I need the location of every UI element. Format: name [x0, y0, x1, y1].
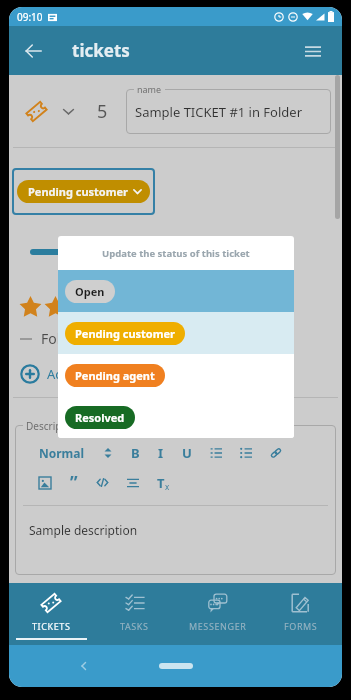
staticText: Followers — [41, 329, 104, 348]
staticText: T — [157, 474, 165, 492]
staticText: Open — [75, 284, 105, 299]
button[interactable]: Back — [9, 27, 57, 75]
staticText: Resolved — [75, 410, 125, 425]
staticText: Sample TICKET #1 in Folder — [135, 103, 303, 121]
button[interactable]: Resolved — [58, 396, 294, 438]
staticText: Add follower — [47, 365, 125, 383]
button[interactable]: Pending customer — [58, 312, 294, 354]
staticText: Pending customer — [28, 184, 128, 199]
staticText: 5 — [97, 99, 108, 124]
staticText: Pending customer — [75, 326, 175, 341]
button[interactable]: Add follower — [20, 364, 125, 384]
staticText: TICKETS — [32, 620, 71, 632]
button[interactable]: Pending agent — [58, 354, 294, 396]
staticText: Description — [26, 419, 80, 433]
button[interactable]: MESSENGER — [176, 583, 259, 645]
staticText: name — [137, 83, 162, 95]
button[interactable]: TASKS — [93, 583, 176, 645]
staticText: Update the status of this ticket — [102, 247, 250, 260]
staticText: tickets — [72, 39, 130, 62]
button[interactable]: FORMS — [259, 583, 342, 645]
staticText: Sample description — [29, 522, 138, 538]
staticText: B — [131, 444, 140, 462]
staticText: ” — [70, 471, 78, 494]
button[interactable]: Open — [58, 270, 294, 312]
staticText: U — [182, 444, 192, 462]
button[interactable]: Menu — [290, 28, 336, 74]
staticText: MESSENGER — [189, 620, 247, 632]
staticText: I — [158, 444, 164, 462]
button[interactable]: TICKETS — [9, 583, 93, 645]
staticText: 09:10 — [17, 10, 43, 24]
button[interactable]: Pending customer — [12, 168, 155, 215]
staticText: FORMS — [284, 620, 318, 632]
staticText: x — [165, 481, 170, 492]
staticText: TASKS — [120, 620, 149, 632]
staticText: Pending agent — [75, 368, 155, 383]
staticText: Normal — [39, 445, 85, 461]
